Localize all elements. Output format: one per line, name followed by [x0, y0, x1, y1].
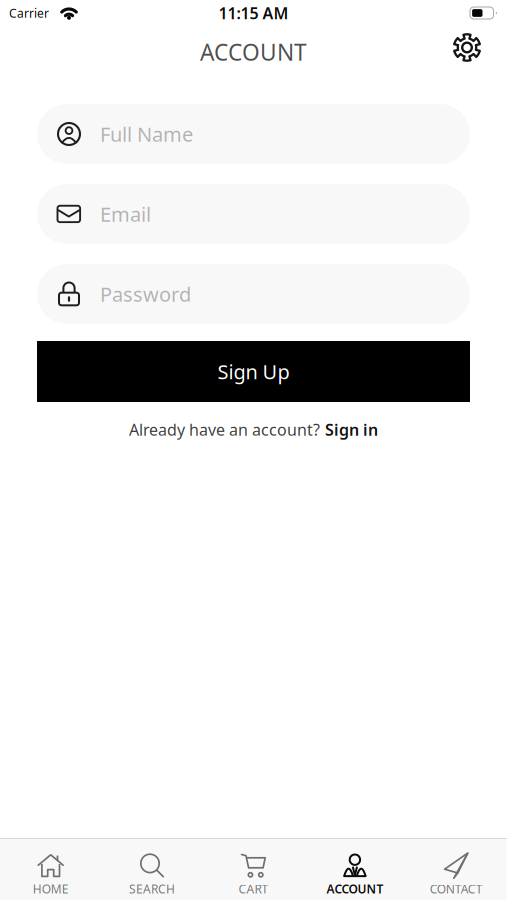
- button[interactable]: Email: [37, 184, 470, 244]
- button[interactable]: Sign Up: [37, 341, 470, 402]
- staticText: ACCOUNT: [326, 881, 383, 897]
- staticText: Sign Up: [217, 358, 289, 385]
- button[interactable]: SEARCH: [101, 839, 203, 900]
- button[interactable]: CART: [203, 839, 304, 900]
- button[interactable]: Full Name: [37, 104, 470, 164]
- staticText: CONTACT: [430, 881, 483, 897]
- staticText: Carrier: [9, 5, 49, 21]
- staticText: Already have an account?: [129, 419, 320, 440]
- button[interactable]: Password: [37, 264, 470, 324]
- button[interactable]: ACCOUNT: [304, 839, 406, 900]
- button[interactable]: Sign in: [325, 419, 378, 440]
- staticText: Sign in: [325, 419, 378, 440]
- staticText: ACCOUNT: [200, 37, 307, 67]
- staticText: Full Name: [100, 121, 193, 147]
- staticText: CART: [238, 881, 268, 897]
- staticText: SEARCH: [129, 881, 175, 897]
- button[interactable]: Settings: [452, 32, 482, 62]
- staticText: 11:15 AM: [218, 2, 288, 24]
- button[interactable]: HOME: [0, 839, 101, 900]
- staticText: Password: [100, 281, 191, 307]
- staticText: Email: [100, 201, 151, 227]
- button[interactable]: CONTACT: [406, 839, 507, 900]
- staticText: HOME: [33, 881, 69, 897]
